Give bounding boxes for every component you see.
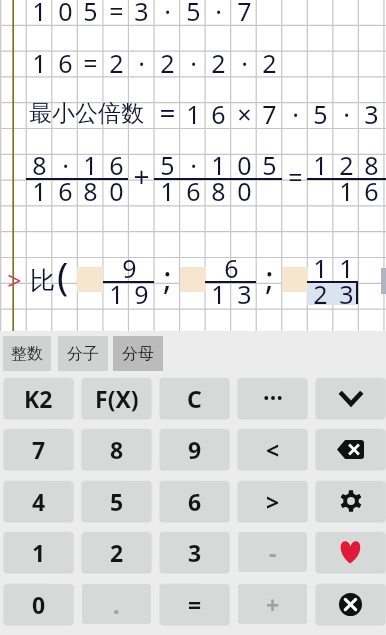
staticText: 6 (188, 486, 202, 517)
staticText: 6 (364, 174, 379, 208)
staticText: = (188, 589, 202, 620)
staticText: 1 (211, 148, 226, 182)
staticText: · (241, 46, 248, 80)
staticText: K2 (24, 383, 53, 414)
staticText: 1 (313, 251, 328, 285)
staticText: 8 (211, 174, 226, 208)
staticText: 分子 (67, 344, 99, 364)
staticText: · (164, 0, 171, 28)
button[interactable]: 2 (82, 532, 151, 572)
staticText: 1 (32, 537, 46, 568)
button[interactable]: 3 (160, 532, 229, 572)
staticText: 6 (58, 46, 73, 80)
button[interactable]: K2 (4, 378, 73, 418)
staticText: > (7, 263, 22, 297)
button[interactable]: Backspace (316, 429, 385, 469)
staticText: 9 (122, 251, 137, 285)
staticText: × (237, 97, 252, 131)
staticText: 7 (262, 97, 277, 131)
button[interactable]: More options (238, 378, 307, 418)
staticText: C (187, 383, 202, 414)
staticText: = (109, 0, 124, 28)
staticText: 1 (83, 148, 98, 182)
staticText: 1 (32, 0, 47, 28)
staticText: · (138, 46, 145, 80)
staticText: 2 (262, 46, 277, 80)
staticText: = (159, 93, 176, 131)
staticText: · (190, 46, 197, 80)
staticText: 5 (110, 486, 124, 517)
staticText: 3 (339, 277, 354, 311)
staticText: 6 (186, 174, 201, 208)
button[interactable]: 整数 (3, 336, 51, 371)
button[interactable]: F(X) (82, 378, 151, 418)
staticText: 0 (237, 174, 252, 208)
staticText: < (266, 434, 280, 465)
button[interactable]: 0 (4, 584, 73, 624)
button[interactable]: = (160, 584, 229, 624)
staticText: 5 (160, 148, 175, 182)
staticText: 2 (339, 148, 354, 182)
staticText: 5 (83, 0, 98, 28)
button[interactable]: . (82, 584, 151, 624)
button[interactable]: C (160, 378, 229, 418)
staticText: · (292, 97, 299, 131)
staticText: 1 (32, 174, 47, 208)
staticText: 1 (186, 97, 201, 131)
staticText: 1 (211, 277, 226, 311)
staticText: 1 (339, 174, 354, 208)
staticText: 5 (313, 97, 328, 131)
staticText: 整数 (11, 344, 43, 364)
staticText: 8 (83, 174, 98, 208)
staticText: 9 (188, 434, 202, 465)
staticText: · (62, 148, 69, 182)
staticText: 1 (313, 148, 328, 182)
staticText: · (215, 0, 222, 28)
staticText: 6 (58, 174, 73, 208)
staticText: > (266, 486, 280, 517)
button[interactable]: 6 (160, 481, 229, 521)
staticText: 8 (32, 148, 47, 182)
staticText: 分母 (122, 344, 154, 364)
button[interactable]: Settings (316, 481, 385, 521)
button[interactable]: 9 (160, 429, 229, 469)
staticText: 1 (160, 174, 175, 208)
staticText: . (113, 589, 120, 620)
staticText: 6 (224, 251, 239, 285)
button[interactable]: Collapse keyboard (316, 378, 385, 418)
staticText: ( (57, 249, 69, 301)
staticText: = (288, 160, 303, 194)
button[interactable]: 7 (4, 429, 73, 469)
staticText: 0 (58, 0, 73, 28)
button[interactable]: 分子 (58, 336, 108, 371)
button[interactable]: Close (316, 584, 385, 624)
staticText: 2 (110, 537, 124, 568)
button[interactable]: 8 (82, 429, 151, 469)
button[interactable]: < (238, 429, 307, 469)
staticText: + (133, 157, 150, 195)
staticText: = (83, 46, 98, 80)
staticText: 1 (109, 277, 124, 311)
button[interactable]: + (238, 584, 307, 624)
button[interactable]: > (238, 481, 307, 521)
button[interactable]: Favorite (316, 532, 385, 572)
staticText: · (190, 148, 197, 182)
staticText: 8 (110, 434, 124, 465)
staticText: 7 (237, 0, 252, 28)
staticText: 2 (313, 277, 328, 311)
staticText: 3 (188, 537, 202, 568)
staticText: 2 (109, 46, 124, 80)
staticText: 0 (109, 174, 124, 208)
staticText: 0 (237, 148, 252, 182)
button[interactable]: - (238, 532, 307, 572)
button[interactable]: 分母 (113, 336, 163, 371)
staticText: 3 (134, 0, 149, 28)
button[interactable]: 5 (82, 481, 151, 521)
staticText: + (266, 589, 280, 620)
staticText: F(X) (95, 383, 139, 414)
staticText: 1 (339, 251, 354, 285)
button[interactable]: 1 (4, 532, 73, 572)
staticText: 7 (32, 434, 46, 465)
button[interactable]: 4 (4, 481, 73, 521)
staticText: 3 (364, 97, 379, 131)
